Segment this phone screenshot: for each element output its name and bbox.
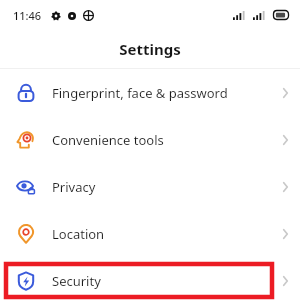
- staticText: Security: [52, 272, 101, 290]
- staticText: Settings: [119, 39, 181, 59]
- staticText: Privacy: [52, 178, 96, 196]
- staticText: Location: [52, 225, 105, 243]
- button[interactable]: Location: [0, 210, 300, 257]
- button[interactable]: Convenience tools: [0, 116, 300, 163]
- button[interactable]: Fingerprint, face & password: [0, 69, 300, 116]
- staticText: Convenience tools: [52, 131, 164, 149]
- button[interactable]: Security: [0, 257, 300, 304]
- staticText: 11:46: [13, 8, 42, 23]
- button[interactable]: Privacy: [0, 163, 300, 210]
- staticText: Fingerprint, face & password: [52, 84, 228, 102]
